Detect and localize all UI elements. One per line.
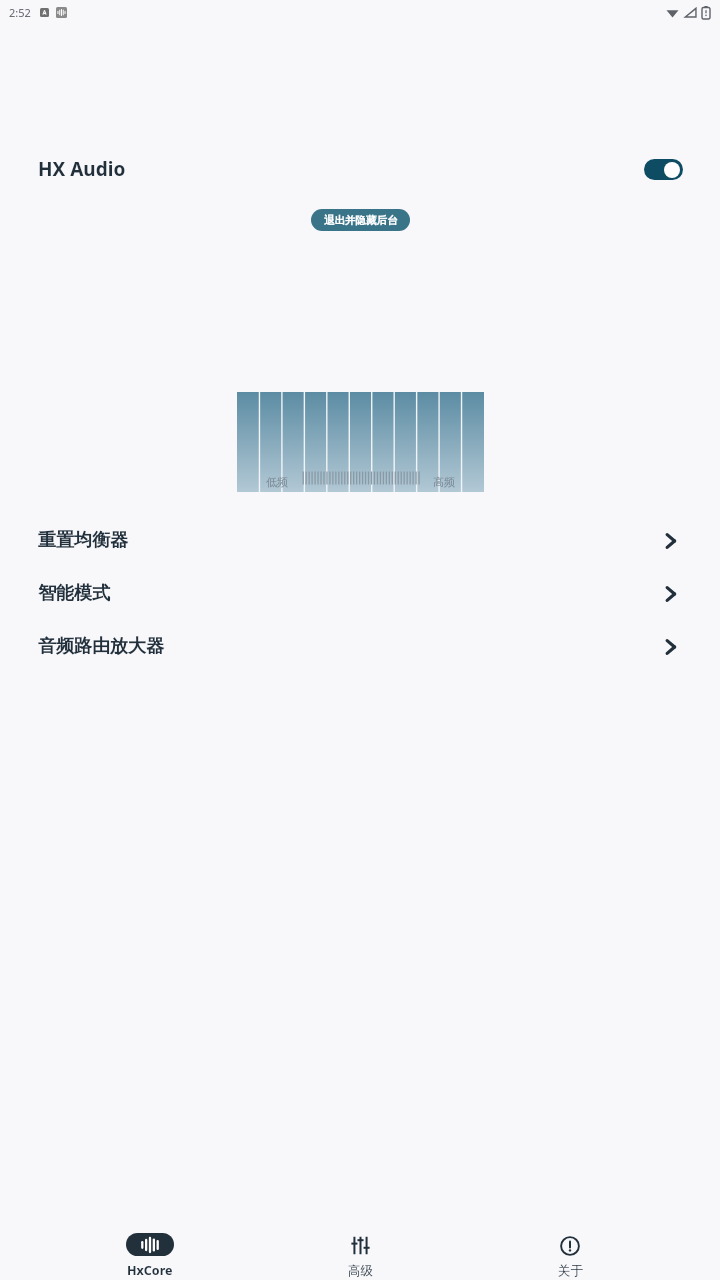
staticText: HxCore [127,1262,173,1279]
button[interactable]: 智能模式 [0,567,720,620]
staticText: 2:52 [9,5,31,20]
button[interactable]: 音频路由放大器 [0,620,720,673]
staticText: 智能模式 [38,582,110,605]
staticText: 音频路由放大器 [38,635,164,658]
staticText: 高频 [433,475,455,489]
button[interactable]: 高级 [300,1222,420,1279]
staticText: HX Audio [38,156,126,182]
staticText: 退出并隐藏后台 [324,214,398,227]
staticText: 高级 [348,1263,373,1279]
button[interactable]: 退出并隐藏后台 [311,209,410,231]
button[interactable]: 关于 [510,1222,630,1279]
button[interactable]: 低频 [237,392,484,492]
staticText: 重置均衡器 [38,529,128,552]
button[interactable]: HxCore [90,1222,210,1279]
staticText: 关于 [558,1263,583,1279]
button[interactable]: HX Audio toggle, on [644,159,683,180]
button[interactable]: 重置均衡器 [0,514,720,567]
staticText: 低频 [266,475,288,489]
